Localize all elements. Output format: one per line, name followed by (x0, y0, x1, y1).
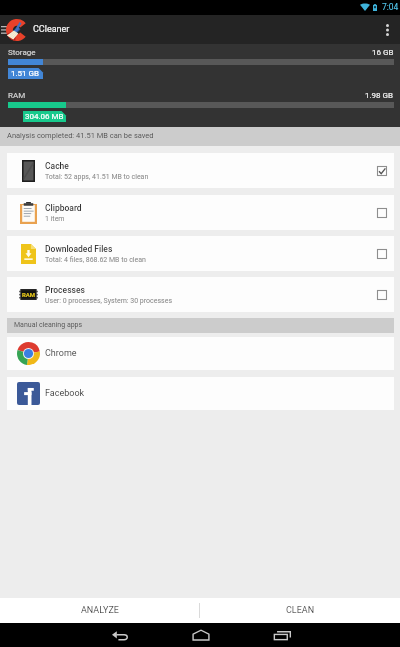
staticText: Downloaded Files (45, 244, 113, 254)
button[interactable]: ANALYZE (0, 598, 199, 623)
staticText: Total: 52 apps, 41.51 MB to clean (45, 173, 149, 181)
staticText: RAM (8, 91, 26, 100)
staticText: Storage (8, 48, 36, 57)
button[interactable]: Selected (370, 153, 394, 188)
button[interactable]: CLEAN (200, 598, 400, 623)
button[interactable]: Chrome (7, 337, 394, 370)
button[interactable]: Navigation drawer (0, 15, 7, 44)
staticText: Chrome (45, 348, 77, 359)
staticText: Total: 4 files, 868.62 MB to clean (45, 256, 146, 264)
staticText: Analysis completed: 41.51 MB can be save… (7, 131, 154, 140)
staticText: Clipboard (45, 203, 82, 213)
staticText: CLEAN (286, 605, 315, 616)
staticText: 7:04 (382, 2, 399, 12)
staticText: ANALYZE (81, 605, 119, 616)
staticText: 1.98 GB (365, 91, 394, 100)
staticText: Facebook (45, 388, 85, 399)
staticText: 304.06 MB (25, 112, 64, 121)
button[interactable]: Cache (7, 153, 394, 188)
button[interactable]: Downloaded Files (7, 236, 394, 271)
staticText: CCleaner (33, 24, 70, 35)
button[interactable]: Not selected (370, 277, 394, 312)
staticText: Manual cleaning apps (14, 321, 83, 329)
staticText: 1.51 GB (11, 69, 40, 78)
staticText: RAM (22, 291, 36, 298)
button[interactable]: Recent apps (242, 623, 322, 647)
button[interactable]: Back (80, 623, 160, 647)
button[interactable]: More options (374, 15, 400, 44)
button[interactable]: Not selected (370, 236, 394, 271)
staticText: 16 GB (372, 48, 394, 57)
button[interactable]: Clipboard (7, 195, 394, 230)
staticText: Cache (45, 161, 69, 171)
staticText: User: 0 processes, System: 30 processes (45, 297, 173, 305)
button[interactable]: Not selected (370, 195, 394, 230)
button[interactable]: Home (161, 623, 241, 647)
button[interactable]: Facebook (7, 377, 394, 410)
staticText: 1 item (45, 215, 65, 223)
button[interactable]: RAM (7, 277, 394, 312)
staticText: Processes (45, 285, 85, 295)
